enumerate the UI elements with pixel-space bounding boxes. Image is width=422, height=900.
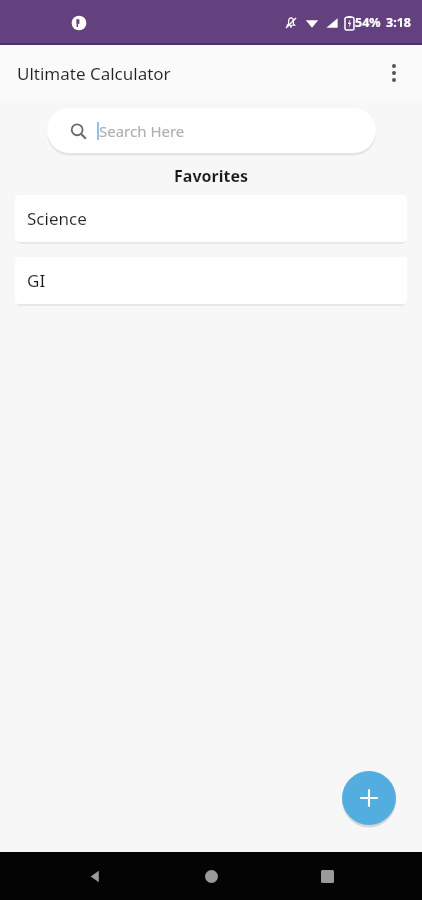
button[interactable]: GI bbox=[15, 257, 407, 304]
staticText: Search Here bbox=[99, 121, 185, 141]
staticText: Favorites bbox=[0, 165, 422, 187]
staticText: Science bbox=[27, 207, 87, 230]
button[interactable]: More options bbox=[372, 51, 416, 95]
button[interactable]: Back bbox=[72, 853, 118, 899]
staticText: 54% bbox=[355, 14, 381, 31]
staticText: 3:18 bbox=[386, 14, 411, 31]
staticText: Ultimate Calculator bbox=[17, 62, 171, 85]
button[interactable]: Home bbox=[188, 853, 234, 899]
button[interactable]: Recent apps bbox=[304, 853, 350, 899]
button[interactable]: Science bbox=[15, 195, 407, 242]
button[interactable]: Add bbox=[342, 771, 396, 825]
staticText: GI bbox=[27, 269, 46, 292]
button[interactable]: Search Here bbox=[47, 108, 376, 153]
